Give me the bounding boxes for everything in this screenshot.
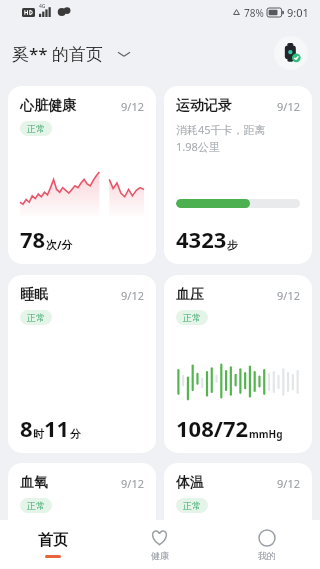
button[interactable]: 睡眠	[8, 275, 156, 453]
staticText: 78%	[244, 6, 264, 20]
staticText: 心脏健康	[20, 97, 76, 115]
staticText: 9/12	[121, 476, 144, 491]
staticText: 健康	[151, 550, 169, 561]
staticText: 步	[227, 238, 238, 252]
staticText: 血压	[176, 286, 204, 304]
staticText: 正常	[183, 500, 201, 511]
button[interactable]: 心脏健康	[8, 86, 156, 264]
staticText: 次/分	[46, 237, 73, 252]
staticText: 9/12	[277, 99, 300, 114]
button[interactable]: 我的	[213, 520, 320, 569]
staticText: 9/12	[121, 288, 144, 303]
staticText: 108/72	[176, 413, 249, 443]
staticText: 正常	[27, 500, 45, 511]
button[interactable]: 健康	[106, 520, 213, 569]
staticText: 4323	[176, 224, 227, 254]
staticText: 4G	[39, 3, 46, 10]
staticText: 时	[33, 427, 44, 441]
button[interactable]: 首页	[0, 520, 106, 569]
staticText: 正常	[183, 312, 201, 323]
button[interactable]: Connected device	[274, 36, 308, 70]
staticText: 运动记录	[176, 97, 232, 115]
staticText: 正常	[27, 123, 45, 134]
staticText: 8	[20, 413, 33, 443]
staticText: 9/12	[121, 99, 144, 114]
staticText: 首页	[38, 531, 68, 550]
staticText: 78	[20, 224, 46, 254]
staticText: 分	[70, 427, 81, 441]
button[interactable]: 血压	[164, 275, 312, 453]
staticText: 9/12	[277, 476, 300, 491]
staticText: 11	[44, 413, 70, 443]
button[interactable]: 奚** 的首页	[12, 42, 130, 65]
staticText: 奚** 的首页	[12, 42, 104, 65]
staticText: 血氧	[20, 474, 48, 492]
staticText: 9/12	[277, 288, 300, 303]
staticText: 正常	[27, 312, 45, 323]
staticText: 消耗45千卡，距离 1.98公里	[176, 122, 266, 154]
staticText: mmHg	[249, 427, 283, 441]
staticText: 9:01	[287, 5, 309, 20]
staticText: 睡眠	[20, 286, 48, 304]
button[interactable]: 体温	[164, 463, 312, 533]
button[interactable]: 血氧	[8, 463, 156, 533]
button[interactable]: 运动记录	[164, 86, 312, 264]
staticText: 体温	[176, 474, 204, 492]
staticText: 我的	[258, 550, 276, 561]
